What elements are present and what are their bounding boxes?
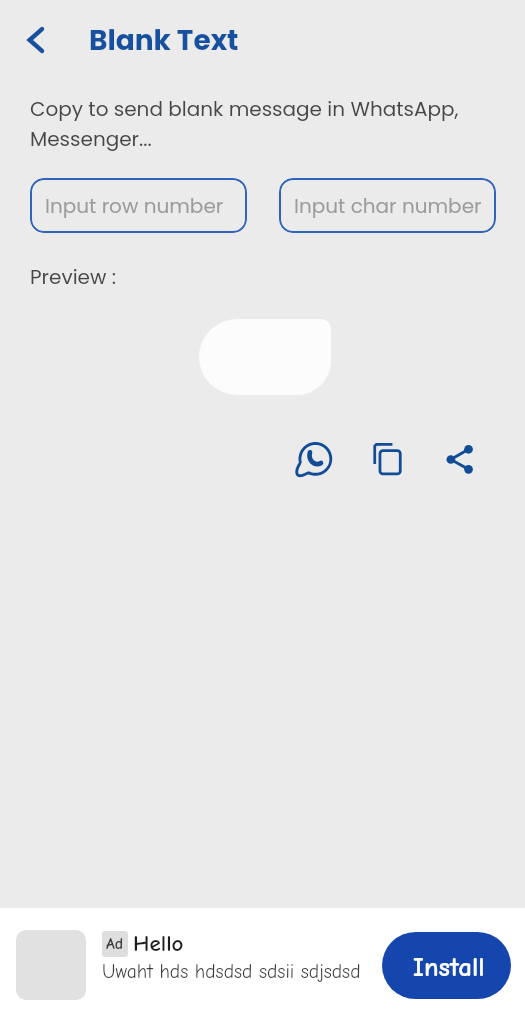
- button[interactable]: Input char number: [279, 178, 496, 233]
- staticText: Hello: [133, 930, 184, 956]
- button[interactable]: Back: [14, 18, 58, 62]
- button[interactable]: Copy: [364, 433, 410, 479]
- staticText: Preview :: [30, 263, 116, 291]
- button[interactable]: Send on WhatsApp: [291, 438, 337, 484]
- staticText: Uwaht hds hdsdsd sdsii sdjsdsd: [102, 960, 361, 982]
- button[interactable]: Share: [436, 437, 482, 483]
- staticText: Copy to send blank message in WhatsApp, …: [30, 95, 475, 153]
- staticText: Input char number: [294, 192, 481, 220]
- staticText: Blank Text: [89, 21, 239, 60]
- button[interactable]: Input row number: [30, 178, 247, 233]
- staticText: Input row number: [45, 192, 224, 220]
- button[interactable]: Install: [382, 932, 511, 999]
- staticText: Ad: [106, 935, 124, 953]
- staticText: Install: [413, 952, 485, 983]
